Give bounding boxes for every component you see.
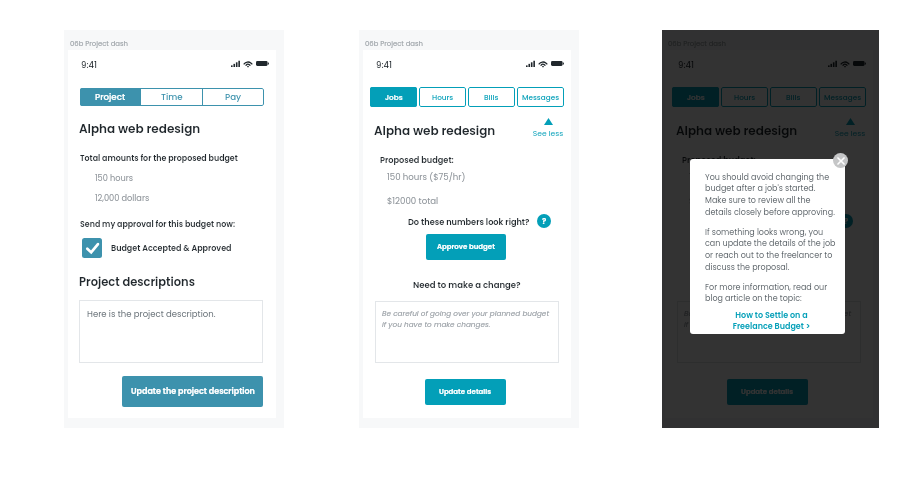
- staticText: ?: [844, 216, 849, 227]
- staticText: 150 hours: [95, 172, 134, 183]
- button[interactable]: Messages: [517, 87, 564, 107]
- staticText: Budget Accepted & Approved: [111, 243, 232, 254]
- staticText: Bills: [786, 92, 801, 102]
- staticText: 150 hours ($75/hr): [689, 171, 768, 183]
- staticText: Alpha web redesign: [676, 122, 798, 139]
- button[interactable]: Update details: [727, 379, 808, 405]
- staticText: Approve budget: [437, 242, 495, 252]
- button[interactable]: Here is the project description.: [79, 300, 263, 363]
- button[interactable]: Help: [537, 214, 551, 228]
- button[interactable]: Bills: [468, 87, 515, 107]
- staticText: Update the project description: [131, 386, 255, 397]
- button[interactable]: Bills: [770, 87, 817, 107]
- staticText: Need to make a change?: [413, 279, 521, 291]
- staticText: Project: [95, 91, 126, 103]
- staticText: 06b Project dash: [365, 39, 424, 49]
- staticText: Jobs: [687, 92, 705, 102]
- button[interactable]: See less: [829, 118, 871, 139]
- staticText: Update details: [439, 387, 492, 397]
- button[interactable]: Pay: [203, 88, 264, 106]
- staticText: 9:41: [376, 59, 392, 71]
- button[interactable]: Hours: [721, 87, 768, 107]
- staticText: Bills: [484, 92, 499, 102]
- staticText: $12000 total: [387, 195, 439, 207]
- staticText: Jobs: [385, 92, 403, 102]
- button[interactable]: Jobs: [370, 87, 417, 107]
- button[interactable]: Project: [80, 88, 140, 106]
- button[interactable]: Jobs: [672, 87, 719, 107]
- button[interactable]: Be careful of going over your planned bu…: [677, 301, 861, 363]
- staticText: Be careful of going over your planned bu…: [382, 308, 550, 330]
- staticText: Total amounts for the proposed budget: [80, 153, 238, 164]
- staticText: Send my approval for this budget now:: [80, 219, 235, 230]
- staticText: $12000 total: [689, 195, 741, 207]
- staticText: 06b Project dash: [70, 39, 129, 49]
- staticText: Alpha web redesign: [374, 122, 496, 139]
- button[interactable]: Approve budget: [426, 234, 506, 260]
- button[interactable]: Time: [141, 88, 202, 106]
- staticText: Here is the project description.: [87, 308, 216, 320]
- staticText: Project descriptions: [79, 274, 195, 290]
- staticText: You should avoid changing the budget aft…: [705, 172, 838, 218]
- staticText: 12,000 dollars: [95, 192, 150, 203]
- staticText: See less: [829, 128, 871, 139]
- staticText: Do these numbers look right?: [710, 216, 832, 227]
- button[interactable]: Messages: [819, 87, 866, 107]
- staticText: Proposed budget:: [682, 154, 756, 165]
- staticText: If something looks wrong, you can update…: [705, 227, 838, 273]
- staticText: For more information, read our blog arti…: [705, 282, 838, 304]
- staticText: Proposed budget:: [380, 154, 454, 165]
- button[interactable]: Update details: [425, 379, 506, 405]
- staticText: Hours: [432, 92, 454, 102]
- staticText: Pay: [225, 91, 242, 103]
- staticText: How to Settle on a Freelance Budget >: [705, 310, 838, 332]
- staticText: 9:41: [81, 59, 97, 71]
- button[interactable]: Approve budget: [728, 234, 808, 260]
- button[interactable]: See less: [527, 118, 569, 139]
- staticText: Hours: [734, 92, 756, 102]
- staticText: Messages: [824, 92, 862, 102]
- staticText: Update details: [741, 387, 794, 397]
- button[interactable]: Hours: [419, 87, 466, 107]
- staticText: Alpha web redesign: [79, 120, 201, 137]
- staticText: Be careful of going over your planned bu…: [684, 308, 852, 330]
- button[interactable]: Be careful of going over your planned bu…: [375, 301, 559, 363]
- staticText: Time: [161, 91, 183, 103]
- button[interactable]: Budget Accepted & Approved: [82, 238, 232, 258]
- button[interactable]: Help: [839, 214, 853, 228]
- staticText: 06b Project dash: [668, 39, 727, 49]
- staticText: Approve budget: [739, 242, 797, 252]
- button[interactable]: Close: [833, 153, 848, 168]
- button[interactable]: Update the project description: [122, 376, 263, 407]
- staticText: Need to make a change?: [715, 279, 823, 291]
- staticText: See less: [527, 128, 569, 139]
- staticText: 9:41: [678, 59, 694, 71]
- staticText: ?: [542, 216, 547, 227]
- staticText: Do these numbers look right?: [408, 216, 530, 227]
- staticText: 150 hours ($75/hr): [387, 171, 466, 183]
- staticText: Messages: [522, 92, 560, 102]
